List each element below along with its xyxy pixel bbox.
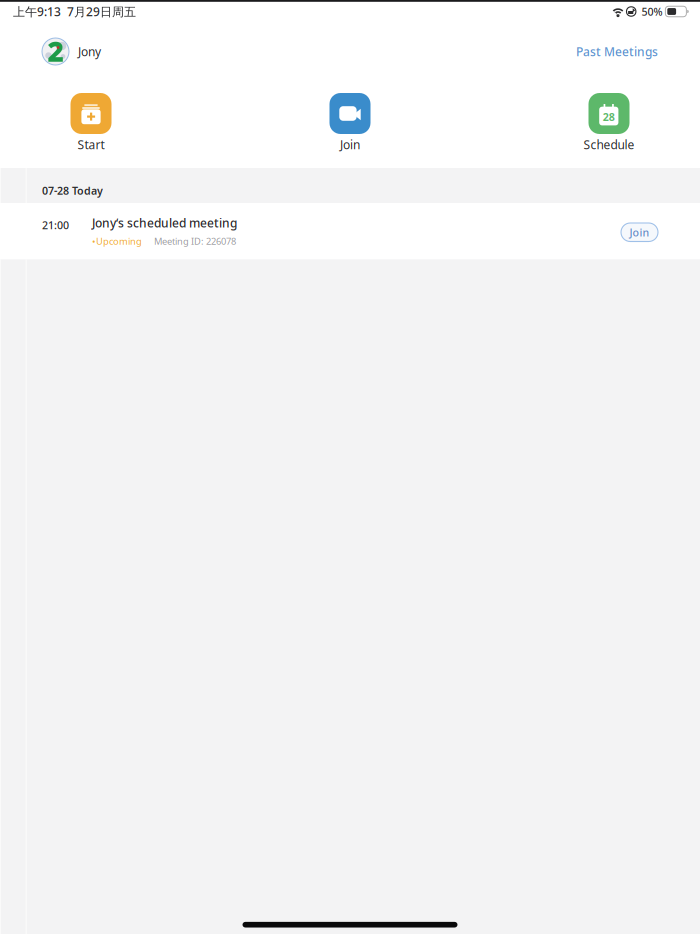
button[interactable]: Start bbox=[70, 93, 111, 151]
staticText: Jony bbox=[78, 43, 101, 59]
staticText: Join bbox=[629, 225, 649, 239]
staticText: 2 bbox=[47, 32, 63, 70]
button[interactable]: 28 bbox=[588, 93, 629, 151]
staticText: Jony‘s scheduled meeting bbox=[92, 215, 237, 231]
staticText: 28 bbox=[603, 110, 615, 124]
button[interactable]: Join bbox=[621, 223, 658, 241]
staticText: 21:00 bbox=[42, 218, 69, 232]
button[interactable]: 2 bbox=[42, 38, 101, 65]
staticText: Meeting ID: 226078 bbox=[154, 235, 236, 247]
staticText: Join bbox=[340, 136, 360, 152]
button[interactable]: 21:00 bbox=[0, 203, 700, 259]
staticText: •Upcoming bbox=[92, 235, 142, 247]
staticText: Start bbox=[77, 136, 104, 152]
button[interactable]: Join bbox=[329, 93, 370, 151]
staticText: 50% bbox=[641, 4, 662, 19]
staticText: 07-28 Today bbox=[42, 183, 103, 198]
button[interactable]: Past Meetings bbox=[576, 43, 658, 59]
staticText: Schedule bbox=[583, 136, 634, 152]
staticText: 上午9:13 7月29日周五 bbox=[13, 3, 136, 19]
staticText: Past Meetings bbox=[576, 43, 658, 59]
